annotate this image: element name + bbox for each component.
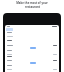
staticText: restaurant [25,5,40,9]
button[interactable] [5,50,59,55]
button[interactable] [5,65,59,70]
button[interactable] [5,37,59,46]
button[interactable] [5,32,59,37]
staticText: Make the most of your [16,1,48,5]
button[interactable] [5,55,59,61]
